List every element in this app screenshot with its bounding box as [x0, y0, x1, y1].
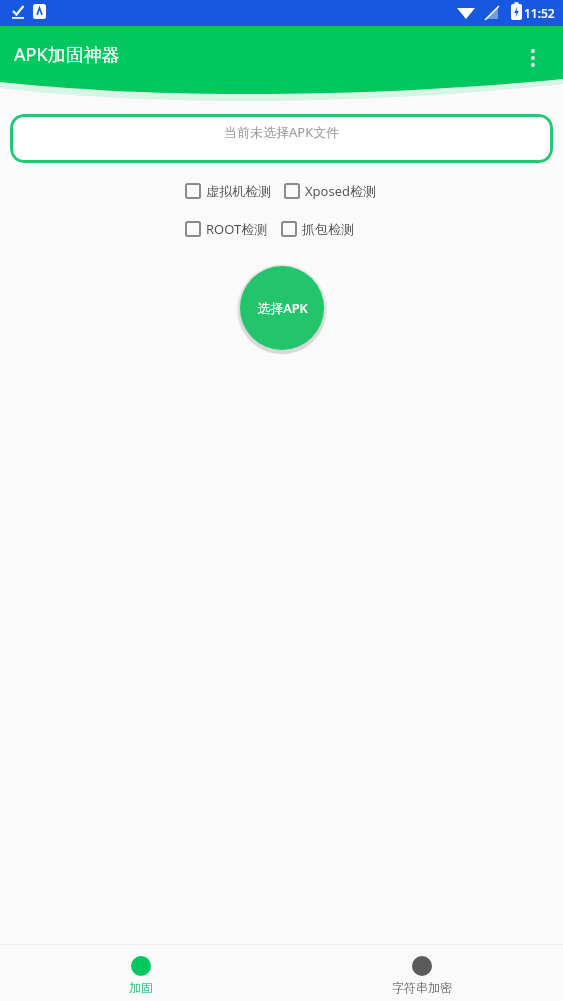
button[interactable]: 加固: [0, 945, 281, 1001]
button[interactable]: 选择APK: [240, 266, 324, 350]
staticText: 11:52: [524, 5, 555, 21]
staticText: 字符串加密: [392, 980, 452, 995]
staticText: 加固: [129, 980, 153, 995]
button[interactable]: ROOT检测: [186, 218, 268, 240]
staticText: 抓包检测: [302, 221, 354, 237]
button[interactable]: More options: [517, 42, 549, 74]
staticText: 选择APK: [257, 299, 308, 317]
button[interactable]: 抓包检测: [282, 219, 354, 239]
staticText: Xposed检测: [305, 182, 377, 200]
button[interactable]: Xposed检测: [285, 180, 377, 202]
button[interactable]: 虚拟机检测: [186, 181, 271, 201]
staticText: ROOT检测: [206, 220, 268, 238]
staticText: APK加固神器: [14, 42, 120, 67]
staticText: 当前未选择APK文件: [224, 123, 340, 141]
button[interactable]: 当前未选择APK文件: [10, 114, 553, 163]
button[interactable]: 字符串加密: [281, 945, 563, 1001]
staticText: 虚拟机检测: [206, 183, 271, 199]
